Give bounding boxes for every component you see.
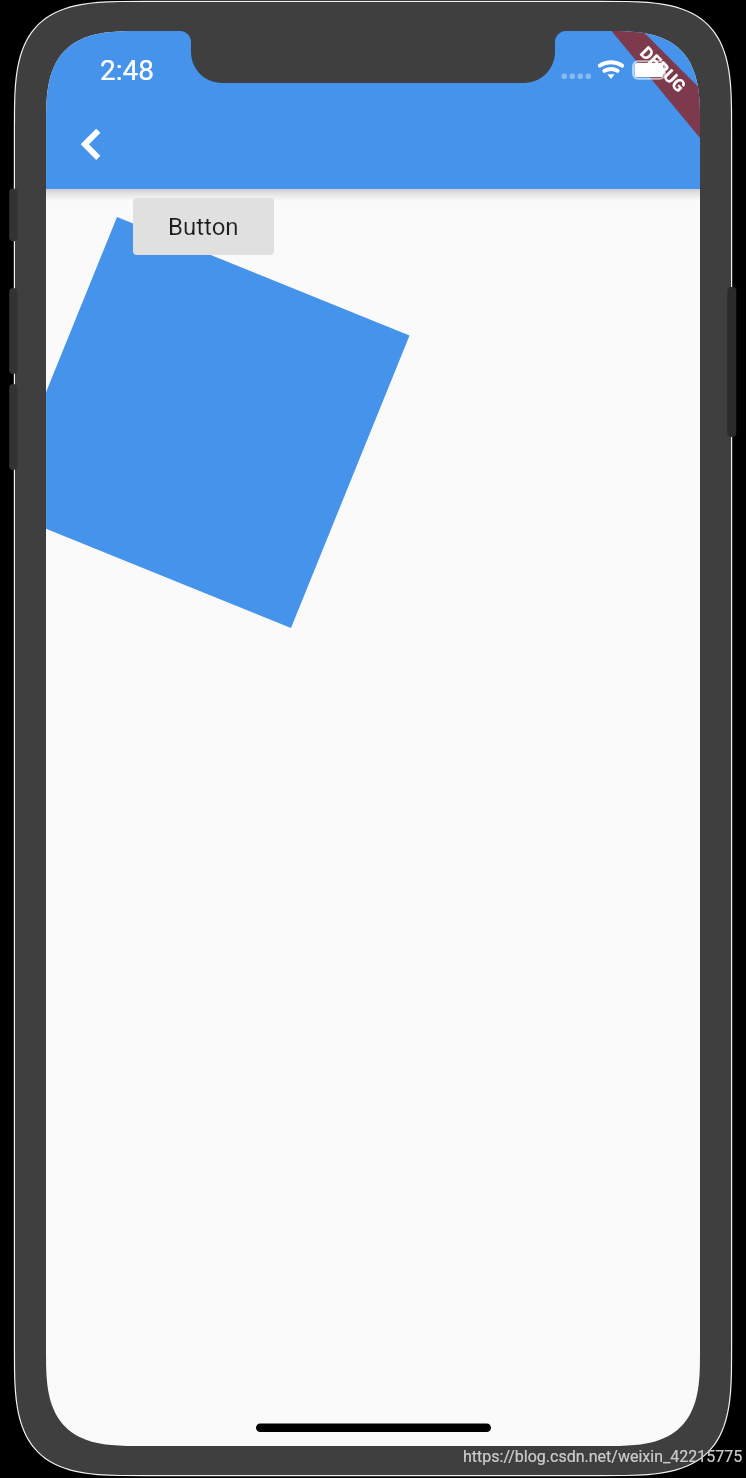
button[interactable]: Back	[62, 112, 126, 176]
staticText: 2:48	[100, 54, 154, 87]
button[interactable]: Button	[133, 198, 274, 255]
staticText: Button	[168, 213, 239, 241]
staticText: https://blog.csdn.net/weixin_42215775	[463, 1447, 743, 1466]
